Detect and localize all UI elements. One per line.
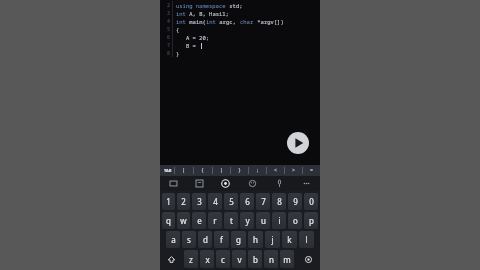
staticText: a [171, 234, 176, 245]
button[interactable]: Play [287, 132, 309, 154]
staticText: int [206, 18, 216, 25]
button[interactable]: h [248, 231, 263, 248]
button[interactable]: y [240, 212, 254, 229]
button[interactable]: Tool 2 [186, 176, 212, 191]
staticText: 7 [261, 196, 266, 207]
staticText: e [197, 215, 202, 226]
staticText: i [278, 215, 281, 226]
staticText: 3 [197, 196, 202, 207]
staticText: 1 [166, 196, 171, 207]
staticText: < [274, 167, 278, 174]
staticText: A = 20; [176, 34, 210, 41]
button[interactable]: 0 [304, 193, 318, 210]
button[interactable]: 1 [162, 193, 175, 210]
button[interactable]: w [177, 212, 190, 229]
staticText: q [166, 215, 171, 226]
staticText: o [293, 215, 298, 226]
button[interactable]: Tool 1 [160, 176, 186, 191]
staticText: 8 [277, 196, 282, 207]
button[interactable]: b [248, 250, 262, 268]
staticText: 4 [213, 196, 218, 207]
staticText: x [205, 254, 210, 265]
staticText: TAB [164, 168, 172, 173]
button[interactable]: f [214, 231, 229, 248]
staticText: r [213, 215, 217, 226]
button[interactable]: > [285, 165, 302, 176]
staticText: 8 [167, 50, 171, 57]
staticText: int [176, 10, 186, 17]
staticText: main( [186, 18, 206, 25]
staticText: w [180, 215, 187, 226]
button[interactable]: j [265, 231, 280, 248]
button[interactable]: e [192, 212, 206, 229]
button[interactable]: 2 [177, 193, 190, 210]
button[interactable]: Tool 5 [266, 176, 293, 191]
staticText: int [176, 18, 186, 25]
button[interactable]: < [267, 165, 284, 176]
button[interactable]: ( [175, 165, 193, 176]
staticText: = [310, 167, 314, 174]
staticText: char [240, 18, 254, 25]
staticText: std; [226, 2, 243, 9]
button[interactable]: Tool 4 [239, 176, 266, 191]
staticText: z [189, 254, 193, 265]
button[interactable]: n [264, 250, 278, 268]
button[interactable]: { [194, 165, 212, 176]
staticText: t [230, 215, 233, 226]
staticText: ( [182, 167, 186, 174]
button[interactable]: g [231, 231, 246, 248]
staticText: > [292, 167, 296, 174]
button[interactable]: p [304, 212, 318, 229]
button[interactable]: a [166, 231, 180, 248]
button[interactable]: d [198, 231, 212, 248]
button[interactable]: z [184, 250, 198, 268]
button[interactable]: } [231, 165, 248, 176]
button[interactable]: 7 [256, 193, 270, 210]
staticText: 9 [293, 196, 298, 207]
staticText: argc, [216, 18, 240, 25]
staticText: 7 [167, 42, 171, 49]
staticText: A, B, Hasil; [186, 10, 229, 17]
button[interactable]: l [299, 231, 314, 248]
button[interactable]: TAB [162, 165, 174, 176]
staticText: 6 [167, 34, 171, 41]
button[interactable]: = [303, 165, 320, 176]
staticText: 5 [229, 196, 234, 207]
button[interactable]: ) [213, 165, 230, 176]
button[interactable]: Tool 6 [293, 176, 320, 191]
button[interactable]: m [280, 250, 294, 268]
button[interactable]: v [232, 250, 246, 268]
staticText: d [203, 234, 208, 245]
button[interactable]: 6 [240, 193, 254, 210]
button[interactable]: 3 [192, 193, 206, 210]
button[interactable]: t [224, 212, 238, 229]
button[interactable]: Backspace [298, 250, 318, 268]
button[interactable]: Shift [162, 250, 181, 268]
button[interactable]: 9 [288, 193, 302, 210]
staticText: v [237, 254, 242, 265]
button[interactable]: 4 [208, 193, 222, 210]
button[interactable]: x [200, 250, 214, 268]
staticText: { [201, 167, 205, 174]
staticText: s [187, 234, 191, 245]
staticText: } [238, 167, 242, 174]
staticText: l [305, 234, 308, 245]
button[interactable]: 8 [272, 193, 286, 210]
button[interactable]: i [272, 212, 286, 229]
button[interactable]: c [216, 250, 230, 268]
button[interactable]: Tool 3 [212, 176, 239, 191]
button[interactable]: s [182, 231, 196, 248]
staticText: c [221, 254, 225, 265]
staticText: 2 [167, 2, 171, 9]
button[interactable]: u [256, 212, 270, 229]
button[interactable]: k [282, 231, 297, 248]
button[interactable]: o [288, 212, 302, 229]
staticText: j [271, 234, 274, 245]
staticText: 2 [181, 196, 186, 207]
button[interactable]: r [208, 212, 222, 229]
button[interactable]: q [162, 212, 175, 229]
staticText: 0 [309, 196, 314, 207]
staticText: } [176, 50, 180, 57]
button[interactable]: ; [249, 165, 266, 176]
button[interactable]: 5 [224, 193, 238, 210]
